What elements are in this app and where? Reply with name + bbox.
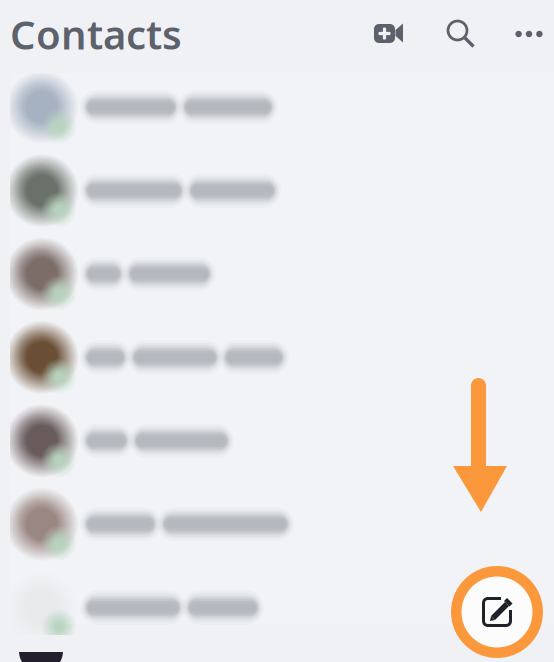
button[interactable] xyxy=(10,482,554,566)
button[interactable] xyxy=(10,232,554,316)
button[interactable]: More options xyxy=(477,20,554,48)
button[interactable]: New message xyxy=(451,566,543,658)
staticText: Contacts xyxy=(10,7,182,60)
button[interactable] xyxy=(10,566,554,649)
button[interactable]: Search xyxy=(405,19,477,49)
button[interactable] xyxy=(10,149,554,232)
button[interactable] xyxy=(10,65,554,149)
button[interactable] xyxy=(10,316,554,399)
button[interactable]: New video call xyxy=(373,19,405,49)
button[interactable] xyxy=(10,399,554,482)
